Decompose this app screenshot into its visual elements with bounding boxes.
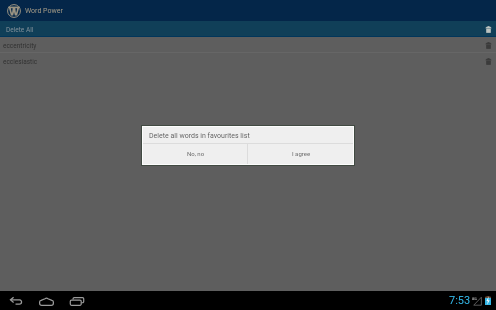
button[interactable]: Back	[6, 293, 26, 309]
button[interactable]: Word Power	[7, 0, 63, 21]
button[interactable]: Delete eccentricity	[481, 38, 496, 53]
staticText: eccentricity	[3, 42, 37, 50]
button[interactable]: Home	[36, 293, 56, 309]
button[interactable]: ecclesiastic	[0, 53, 496, 68]
button[interactable]: I agree	[248, 144, 353, 164]
button[interactable]: eccentricity	[0, 37, 496, 52]
button[interactable]: Delete All	[0, 21, 496, 36]
staticText: Delete All	[6, 26, 34, 34]
staticText: ecclesiastic	[3, 58, 38, 66]
staticText: No, no	[187, 150, 205, 157]
staticText: Delete all words in favourites list	[149, 132, 250, 140]
staticText: 7:53	[449, 294, 471, 307]
button[interactable]: No, no	[143, 144, 247, 164]
button[interactable]: Recent apps	[67, 293, 87, 309]
button[interactable]: Delete ecclesiastic	[481, 54, 496, 69]
staticText: Word Power	[25, 7, 63, 15]
staticText: I agree	[292, 150, 311, 157]
button[interactable]: Delete all favourites	[481, 22, 496, 37]
